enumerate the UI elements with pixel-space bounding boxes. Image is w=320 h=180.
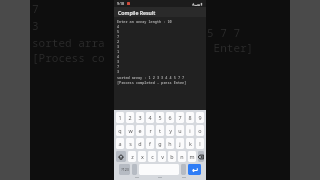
staticText: g (158, 140, 162, 147)
staticText: 2 (117, 39, 120, 44)
staticText: [Process completed - press Enter] (117, 80, 187, 85)
staticText: i (189, 127, 191, 134)
button[interactable]: r (146, 125, 154, 136)
staticText: j (179, 140, 181, 147)
staticText: 2 (128, 114, 132, 121)
button[interactable]: l (196, 138, 204, 149)
button[interactable]: e (136, 125, 144, 136)
staticText: 7 (117, 34, 120, 39)
button[interactable]: Enter (188, 164, 201, 175)
button[interactable]: a (116, 138, 124, 149)
button[interactable]: y (166, 125, 174, 136)
staticText: 4 (148, 114, 152, 121)
button[interactable]: 8 (186, 112, 194, 123)
button[interactable]: f (146, 138, 154, 149)
staticText: v (161, 153, 164, 160)
staticText: x (141, 153, 144, 160)
staticText: o (198, 127, 202, 134)
staticText: 6 (168, 114, 172, 121)
staticText: t (159, 127, 161, 134)
button[interactable]: k (186, 138, 194, 149)
button[interactable]: h (166, 138, 174, 149)
staticText: 5 (117, 29, 120, 34)
staticText: k (189, 140, 192, 147)
button[interactable]: Shift (116, 151, 126, 162)
staticText: 3 (32, 18, 39, 33)
staticText: 3 (117, 44, 120, 49)
staticText: ?123 (121, 167, 129, 172)
staticText: 5 7 7 (207, 25, 240, 40)
staticText: sorted arra (32, 35, 105, 50)
button[interactable]: i (186, 125, 194, 136)
button[interactable]: o (196, 125, 204, 136)
button[interactable]: x (138, 151, 146, 162)
button[interactable]: 5 (156, 112, 164, 123)
staticText: m (189, 153, 195, 160)
button[interactable]: 6 (166, 112, 174, 123)
staticText: 7 (178, 114, 182, 121)
staticText: 4 (117, 24, 120, 29)
staticText: u (178, 127, 182, 134)
staticText: d (138, 140, 142, 147)
button[interactable]: 4 (146, 112, 154, 123)
button[interactable]: s (126, 138, 134, 149)
staticText: 8 (188, 114, 192, 121)
staticText: z (131, 153, 134, 160)
staticText: a (118, 140, 122, 147)
button[interactable] (132, 164, 137, 175)
staticText: [Process co (32, 50, 105, 65)
button[interactable]: Delete (198, 151, 204, 162)
button[interactable]: n (178, 151, 186, 162)
button[interactable]: Compile Result (114, 7, 206, 17)
button[interactable]: j (176, 138, 184, 149)
button[interactable]: u (176, 125, 184, 136)
button[interactable]: v (158, 151, 166, 162)
button[interactable]: t (156, 125, 164, 136)
button[interactable]: q (116, 125, 124, 136)
button[interactable]: 9 (196, 112, 204, 123)
staticText: c (151, 153, 154, 160)
staticText: n (180, 153, 184, 160)
staticText: s (129, 140, 132, 147)
staticText: y (169, 127, 172, 134)
button[interactable]: b (168, 151, 176, 162)
staticText: 3 (117, 59, 120, 64)
staticText: 1 (117, 49, 120, 54)
staticText: r (149, 127, 152, 134)
button[interactable]: m (188, 151, 196, 162)
button[interactable]: 3 (136, 112, 144, 123)
button[interactable]: d (136, 138, 144, 149)
button[interactable]: 1 (116, 112, 124, 123)
button[interactable]: 7 (176, 112, 184, 123)
staticText: 9 (198, 114, 202, 121)
staticText: f (149, 140, 151, 147)
staticText: sorted array : 1 2 3 3 4 4 5 7 7 (117, 75, 185, 80)
staticText: 4 (117, 54, 120, 59)
staticText: 3 (138, 114, 142, 121)
staticText: e (138, 127, 142, 134)
staticText: l (199, 140, 201, 147)
staticText: Compile Result (118, 9, 156, 16)
staticText: ▲▂▃ ▮ (192, 1, 203, 6)
staticText: 1 (118, 114, 122, 121)
button[interactable]: c (148, 151, 156, 162)
button[interactable] (181, 164, 186, 175)
staticText: 9:18 (117, 1, 125, 6)
staticText: 7 (117, 64, 120, 69)
staticText: h (168, 140, 172, 147)
button[interactable]: g (156, 138, 164, 149)
button[interactable]: ?123 (119, 164, 130, 175)
button[interactable]: z (128, 151, 136, 162)
staticText: 5 (158, 114, 162, 121)
staticText: w (128, 127, 133, 134)
staticText: Enter] (207, 40, 254, 55)
staticText: q (118, 127, 122, 134)
button[interactable]: 2 (126, 112, 134, 123)
staticText: 7 (32, 1, 39, 16)
button[interactable]: w (126, 125, 134, 136)
staticText: b (170, 153, 174, 160)
